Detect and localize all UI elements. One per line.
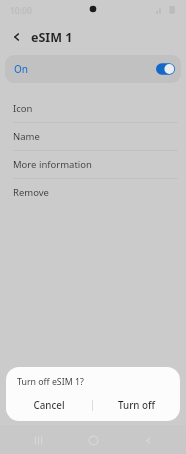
- staticText: Turn off: [118, 399, 155, 412]
- button[interactable]: On: [5, 55, 181, 83]
- staticText: 10:00: [10, 5, 32, 17]
- button[interactable]: Back: [6, 26, 28, 48]
- staticText: Name: [13, 130, 40, 143]
- staticText: Remove: [13, 186, 49, 199]
- staticText: Turn off eSIM 1?: [17, 376, 84, 388]
- staticText: On: [14, 62, 29, 76]
- button[interactable]: Turn off: [93, 395, 180, 415]
- staticText: Cancel: [33, 399, 65, 412]
- button[interactable]: More information: [0, 151, 186, 178]
- button[interactable]: Cancel: [6, 395, 92, 415]
- staticText: eSIM 1: [31, 29, 73, 46]
- button[interactable]: Icon: [0, 95, 186, 122]
- staticText: Icon: [13, 102, 33, 115]
- button[interactable]: Name: [0, 123, 186, 150]
- button[interactable]: Remove: [0, 179, 186, 206]
- staticText: More information: [13, 158, 92, 171]
